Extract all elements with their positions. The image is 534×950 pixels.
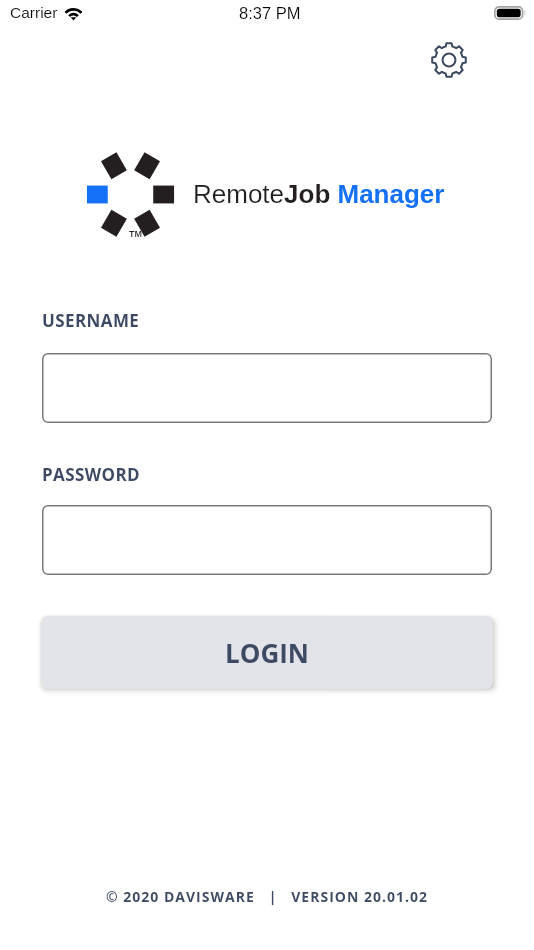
button[interactable] xyxy=(42,353,492,423)
button[interactable]: LOGIN xyxy=(41,616,493,689)
staticText: LOGIN xyxy=(225,635,309,670)
staticText: © 2020 DAVISWARE | VERSION 20.01.02 xyxy=(0,887,534,906)
button[interactable]: Settings xyxy=(428,39,469,80)
staticText: TM xyxy=(129,229,142,239)
staticText: 8:37 PM xyxy=(239,4,301,22)
staticText: RemoteJob Manager xyxy=(193,179,445,208)
staticText: USERNAME xyxy=(42,309,140,332)
staticText: Carrier xyxy=(10,4,58,21)
staticText: PASSWORD xyxy=(42,463,141,486)
button[interactable] xyxy=(42,505,492,575)
